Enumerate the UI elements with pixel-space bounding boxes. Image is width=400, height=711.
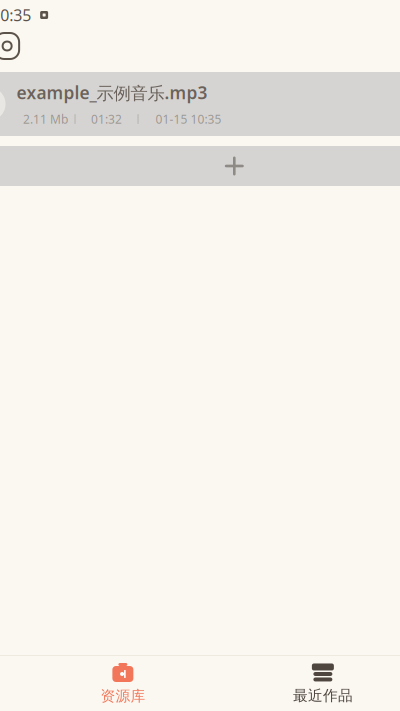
button[interactable]: Add item	[0, 146, 400, 186]
button[interactable]: 最近作品	[223, 656, 400, 711]
staticText: 资源库	[100, 687, 145, 705]
button[interactable]: example_示例音乐.mp3	[0, 72, 400, 136]
staticText: 01-15 10:35	[155, 111, 221, 127]
staticText: 01:32	[91, 111, 122, 127]
button[interactable]: 资源库	[23, 656, 223, 711]
staticText: 最近作品	[293, 686, 353, 704]
staticText: 2.11 Mb	[23, 111, 68, 127]
staticText: example_示例音乐.mp3	[16, 81, 207, 104]
button[interactable]: Settings	[0, 28, 25, 64]
staticText: 10:35	[0, 4, 31, 26]
